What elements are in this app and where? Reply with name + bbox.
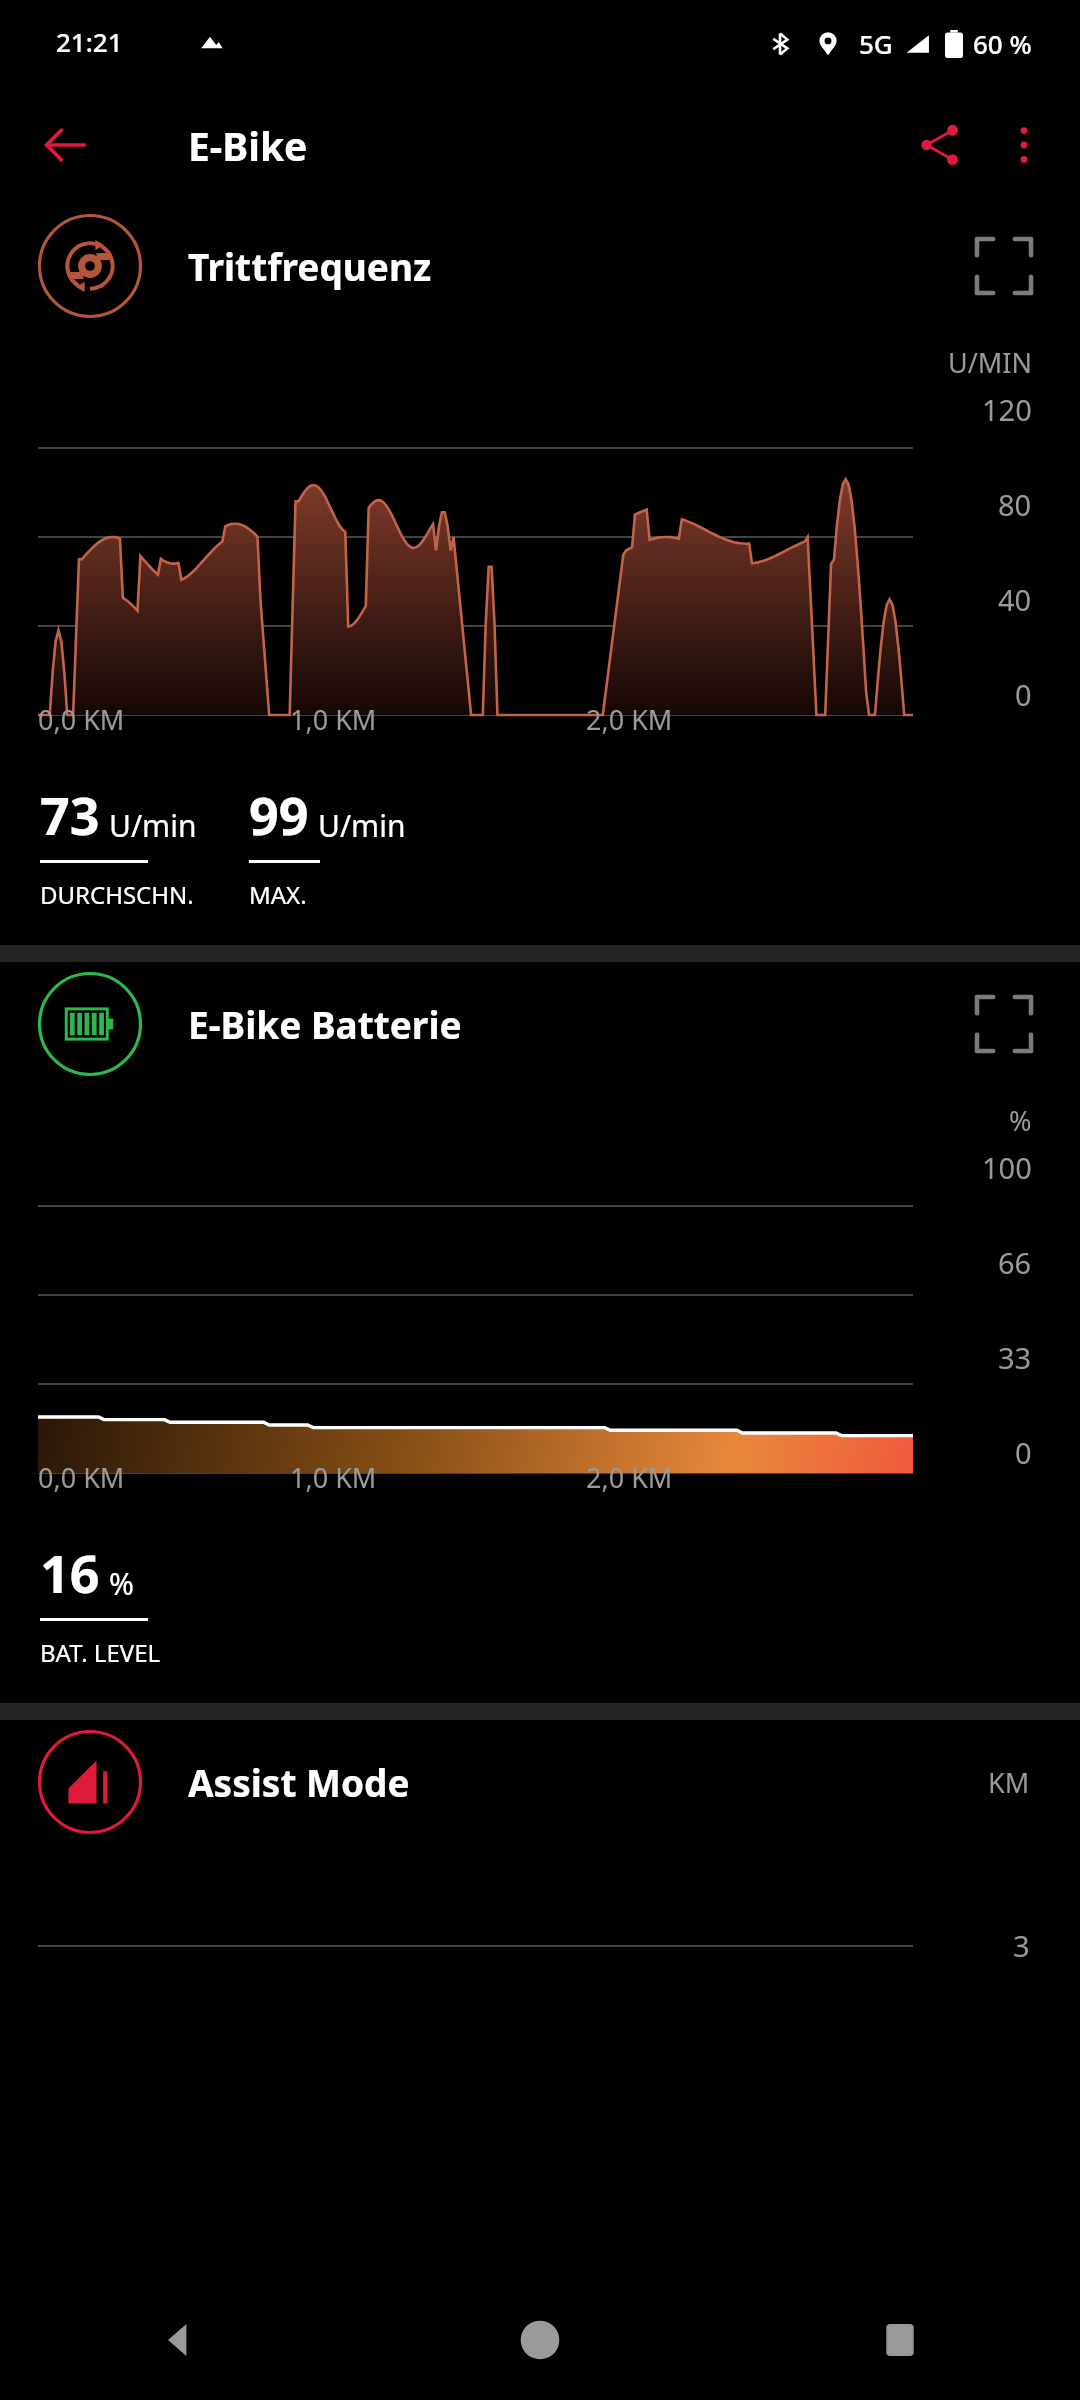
staticText: 5G (859, 26, 893, 61)
staticText: U/MIN (948, 344, 1032, 381)
staticText: 0,0 KM (38, 701, 125, 738)
button[interactable]: Home (360, 2280, 720, 2400)
staticText: 40 (998, 580, 1032, 619)
staticText: MAX. (249, 878, 307, 911)
button[interactable]: Expand chart (962, 982, 1046, 1066)
staticText: 2,0 KM (586, 701, 673, 738)
staticText: KM (988, 1764, 1030, 1801)
button[interactable]: E-Bike Batterie (0, 962, 1080, 1086)
staticText: 80 (998, 485, 1032, 524)
button[interactable]: Back (28, 107, 104, 183)
button[interactable]: Trittfrequenz (0, 204, 1080, 328)
staticText: 66 (998, 1243, 1032, 1282)
staticText: U/min (109, 805, 197, 846)
staticText: 0,0 KM (38, 1459, 125, 1496)
staticText: Assist Mode (188, 1757, 410, 1807)
staticText: 1,0 KM (290, 1459, 377, 1496)
staticText: E-Bike Batterie (188, 999, 462, 1049)
staticText: 2,0 KM (586, 1459, 673, 1496)
staticText: DURCHSCHN. (40, 878, 194, 911)
staticText: U/min (318, 805, 406, 846)
staticText: 100 (982, 1148, 1032, 1187)
button[interactable]: More options (982, 103, 1066, 187)
button[interactable]: Assist Mode (0, 1720, 1080, 1844)
staticText: 21:21 (56, 24, 123, 59)
staticText: 3 (1013, 1926, 1030, 1965)
staticText: 33 (998, 1338, 1032, 1377)
staticText: 73 (40, 779, 100, 850)
staticText: 99 (249, 779, 309, 850)
button[interactable]: Back (0, 2280, 360, 2400)
staticText: 120 (982, 390, 1032, 429)
button[interactable]: Recent apps (720, 2280, 1080, 2400)
staticText: BAT. LEVEL (40, 1636, 161, 1669)
button[interactable]: Expand chart (962, 224, 1046, 308)
staticText: 16 (40, 1537, 100, 1608)
staticText: % (109, 1563, 134, 1604)
staticText: 0 (1015, 675, 1032, 714)
staticText: 0 (1015, 1433, 1032, 1472)
staticText: Trittfrequenz (188, 241, 432, 291)
staticText: % (1009, 1102, 1032, 1139)
button[interactable]: Share (898, 103, 982, 187)
staticText: 1,0 KM (290, 701, 377, 738)
staticText: E-Bike (188, 119, 308, 172)
staticText: 60 % (973, 26, 1032, 61)
